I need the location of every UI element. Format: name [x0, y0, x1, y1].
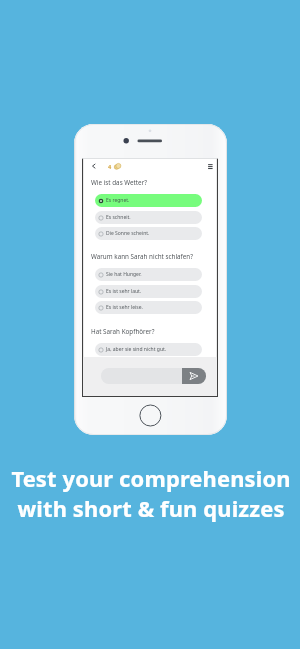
- staticText: Warum kann Sarah nicht schlafen?: [91, 252, 193, 261]
- button[interactable]: Sie hat Hunger.: [95, 268, 202, 281]
- button[interactable]: Menu: [202, 161, 214, 173]
- button[interactable]: [101, 368, 205, 384]
- button[interactable]: Send: [182, 368, 206, 384]
- button[interactable]: Es schneit.: [95, 211, 202, 224]
- staticText: Es ist sehr laut.: [106, 288, 142, 295]
- staticText: Test your comprehension: [11, 464, 291, 494]
- staticText: Es ist sehr leise.: [106, 304, 143, 311]
- staticText: Ja, aber sie sind nicht gut.: [106, 346, 167, 353]
- button[interactable]: Coins: [105, 161, 127, 173]
- button[interactable]: Back: [88, 161, 100, 173]
- button[interactable]: Ja, aber sie sind nicht gut.: [95, 343, 202, 356]
- staticText: Die Sonne scheint.: [106, 230, 150, 237]
- button[interactable]: Es ist sehr laut.: [95, 285, 202, 298]
- staticText: Wie ist das Wetter?: [91, 178, 147, 187]
- staticText: 4: [108, 163, 112, 171]
- button[interactable]: Es regnet.: [95, 194, 202, 207]
- staticText: Hat Sarah Kopfhörer?: [91, 327, 155, 336]
- button[interactable]: Es ist sehr leise.: [95, 301, 202, 314]
- staticText: Es schneit.: [106, 214, 131, 221]
- staticText: Sie hat Hunger.: [106, 271, 142, 278]
- staticText: Es regnet.: [106, 197, 130, 204]
- button[interactable]: Die Sonne scheint.: [95, 227, 202, 240]
- staticText: with short & fun quizzes: [17, 494, 285, 524]
